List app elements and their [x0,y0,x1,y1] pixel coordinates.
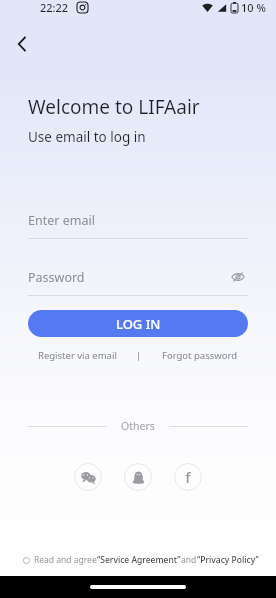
button[interactable]: Agree checkbox [18,552,34,568]
staticText: Use email to log in [28,128,146,146]
button[interactable]: “Service Agreement” [97,554,181,566]
staticText: Enter email [28,212,95,229]
staticText: “Service Agreement” [97,554,181,566]
button[interactable]: Back [4,26,40,62]
staticText: Password [28,269,85,286]
button[interactable]: LOG IN [28,310,248,337]
staticText: 10 % [241,0,266,15]
button[interactable]: Password [28,267,248,296]
button[interactable]: Show password [228,267,248,287]
staticText: Register via email [38,349,117,362]
staticText: “Privacy Policy” [197,554,259,566]
button[interactable]: Register via email [36,347,119,364]
button[interactable]: QQ login [124,463,152,491]
button[interactable]: WeChat login [74,463,102,491]
staticText: Others [121,419,155,433]
staticText: f [185,467,191,487]
button[interactable]: Forgot password [160,347,240,364]
staticText: Forgot password [162,349,238,362]
staticText: | [136,349,142,362]
button[interactable]: Facebook login [174,463,202,491]
staticText: LOG IN [116,315,161,333]
button[interactable]: Enter email [28,212,248,239]
staticText: and [181,554,197,566]
staticText: Welcome to LIFAair [28,94,200,120]
staticText: 22:22 [40,0,69,15]
button[interactable]: “Privacy Policy” [197,554,259,566]
staticText: Read and agree [34,554,97,566]
